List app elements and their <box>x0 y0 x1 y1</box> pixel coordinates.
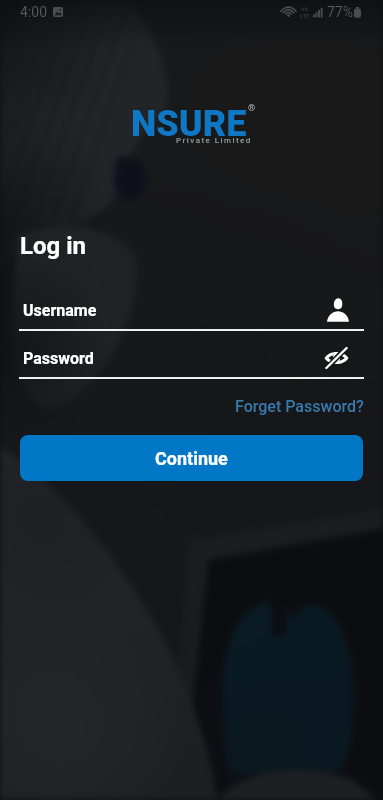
staticText: Password <box>23 349 324 368</box>
other: Toggle password visibility <box>324 347 349 369</box>
button[interactable]: Forget Password? <box>216 392 383 421</box>
button[interactable]: Continue <box>20 435 363 481</box>
staticText: LTE <box>300 12 310 19</box>
staticText: Username <box>23 301 327 320</box>
staticText: Private Limited <box>176 136 252 145</box>
staticText: Log in <box>20 232 87 260</box>
staticText: 4:00 <box>20 4 47 20</box>
staticText: Continue <box>155 448 228 469</box>
staticText: NSURE <box>131 103 247 145</box>
other: User <box>327 298 349 322</box>
staticText: ® <box>248 103 256 114</box>
staticText: Vo <box>301 5 309 12</box>
staticText: 77% <box>327 4 353 20</box>
